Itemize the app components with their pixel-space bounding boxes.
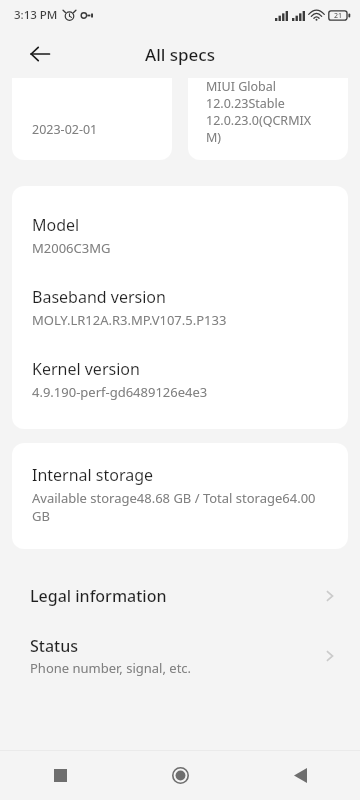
button[interactable]: Home	[120, 751, 240, 800]
staticText: 21	[334, 11, 343, 21]
button[interactable]: Recent apps	[0, 751, 120, 800]
staticText: 12.0.23.0(QCRMIX	[206, 112, 312, 129]
staticText: MOLY.LR12A.R3.MP.V107.5.P133	[32, 311, 227, 329]
button[interactable]: Back	[18, 32, 62, 76]
button[interactable]: 2023-02-01	[12, 78, 172, 160]
staticText: Phone number, signal, etc.	[30, 659, 192, 677]
staticText: Kernel version	[32, 358, 140, 380]
button[interactable]: Status	[0, 625, 360, 687]
staticText: Legal information	[30, 585, 167, 607]
button[interactable]: Legal information	[0, 567, 360, 625]
staticText: 12.0.23Stable	[206, 95, 285, 112]
staticText: Available storage48.68 GB / Total storag…	[32, 489, 328, 525]
staticText: 4.9.190-perf-gd6489126e4e3	[32, 383, 208, 401]
staticText: Status	[30, 635, 79, 657]
staticText: M2006C3MG	[32, 239, 111, 257]
button[interactable]: Back	[240, 751, 360, 800]
staticText: MIUI Global	[206, 78, 277, 95]
staticText: 2023-02-01	[32, 121, 98, 138]
staticText: 3:13 PM	[14, 7, 58, 23]
staticText: M)	[206, 129, 222, 146]
button[interactable]: MIUI Global	[188, 78, 348, 160]
staticText: Internal storage	[32, 464, 154, 486]
staticText: Baseband version	[32, 286, 166, 308]
button[interactable]: Internal storage	[12, 443, 348, 549]
staticText: All specs	[145, 43, 215, 66]
staticText: Model	[32, 214, 80, 236]
